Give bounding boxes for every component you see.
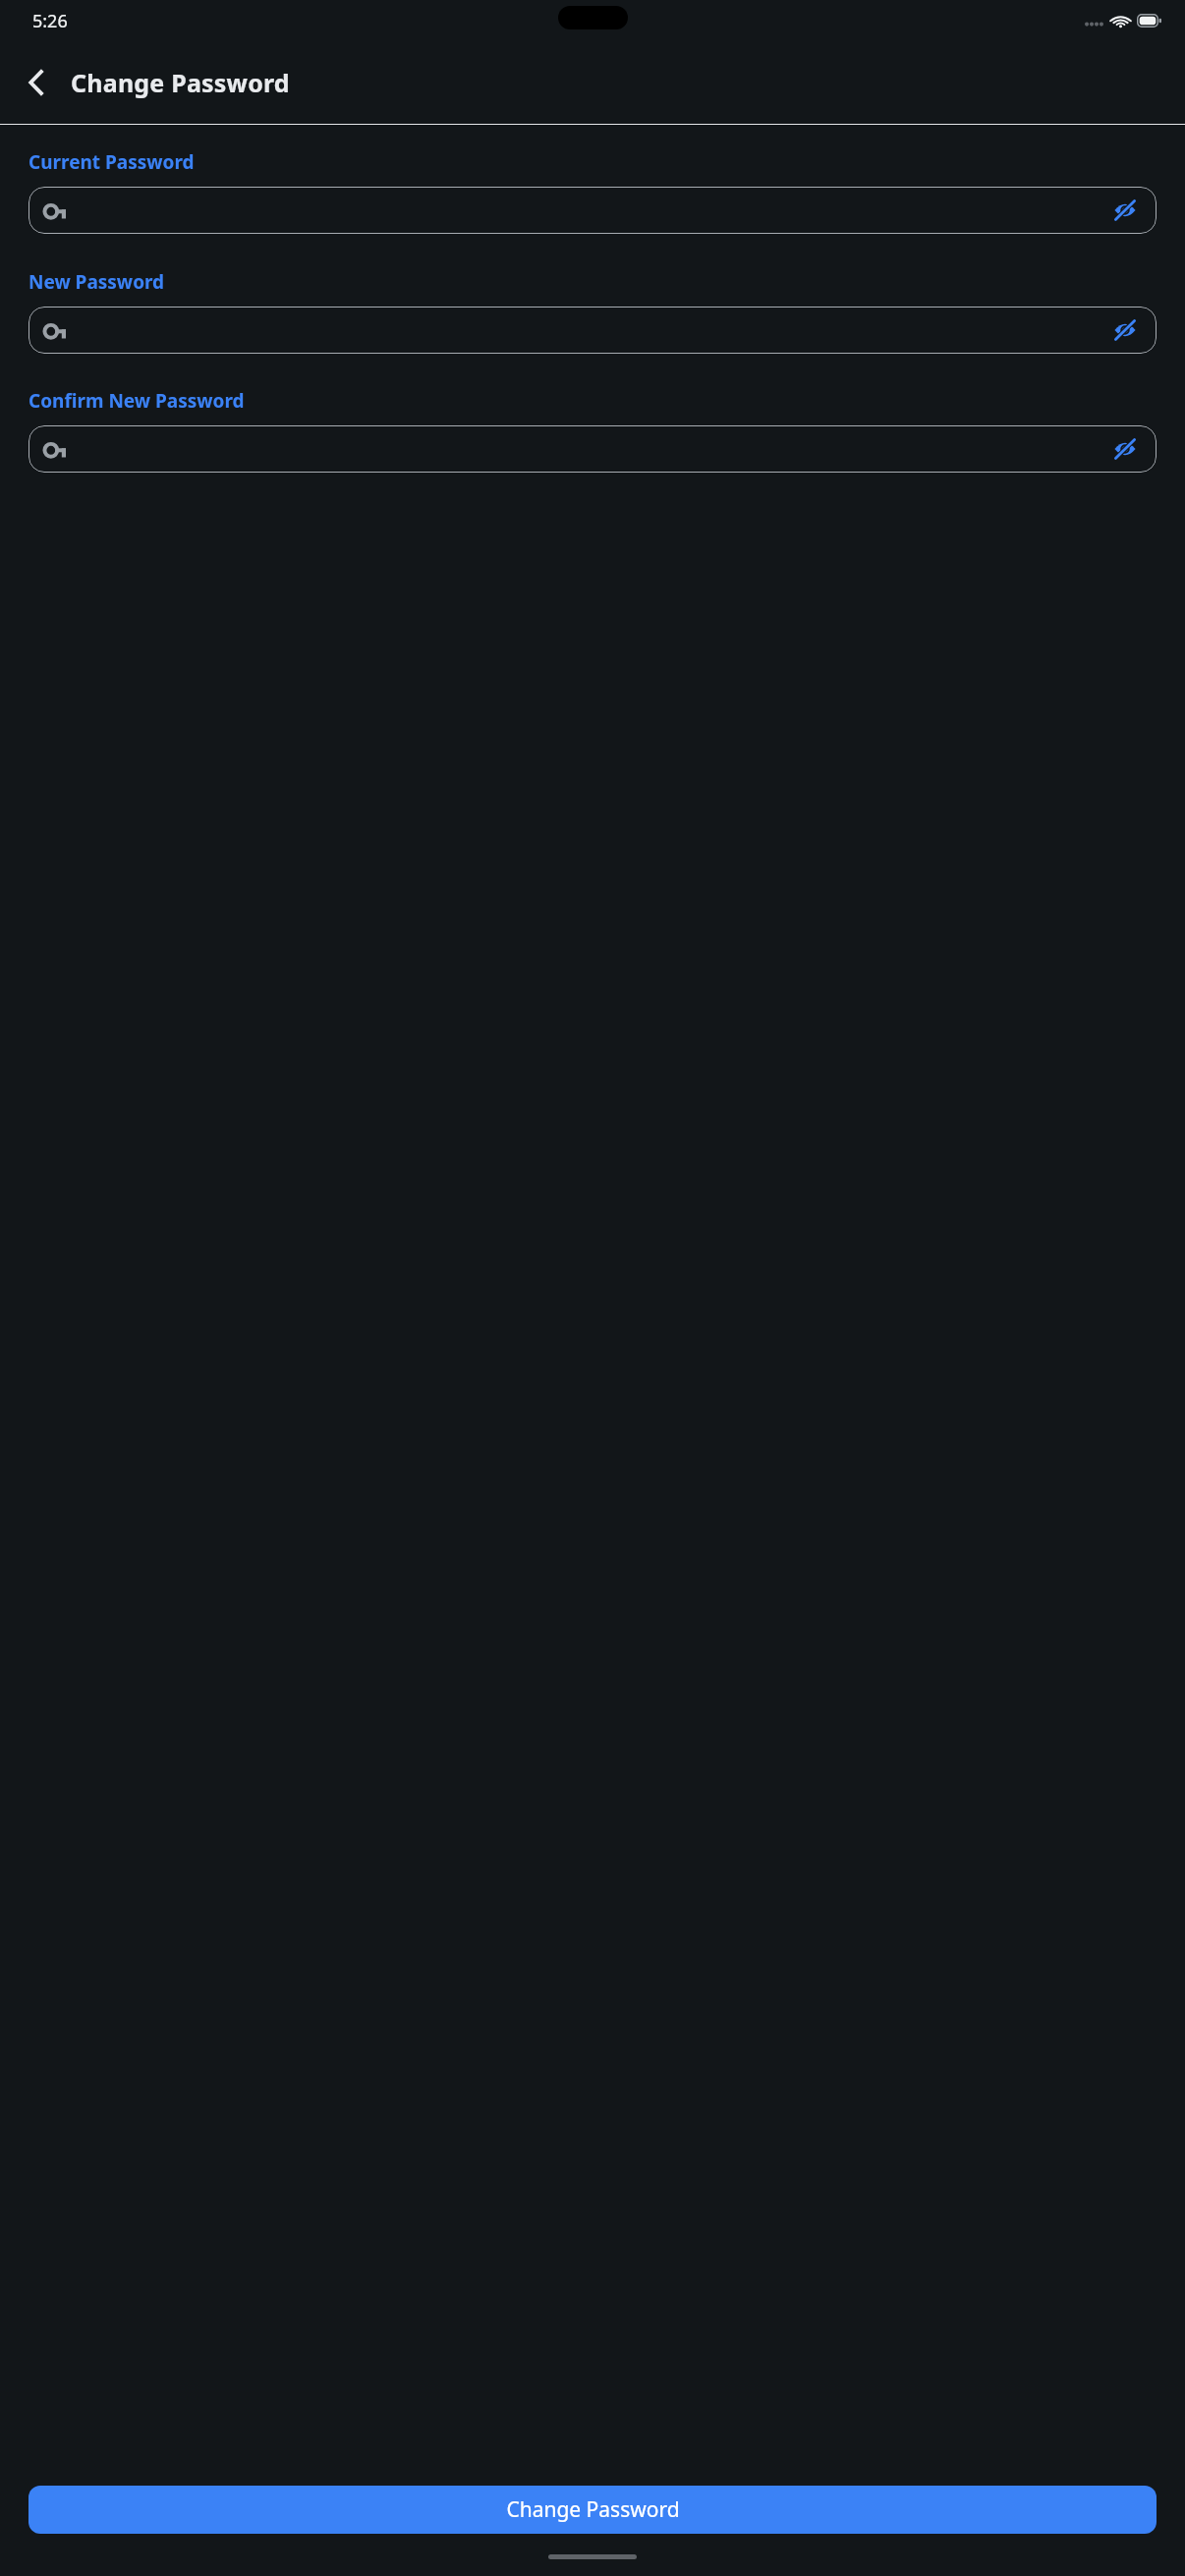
staticText: New Password <box>28 269 165 295</box>
button[interactable]: Show password <box>28 187 1157 234</box>
staticText: Confirm New Password <box>28 388 245 414</box>
button[interactable]: Change Password <box>28 2486 1157 2534</box>
staticText: Current Password <box>28 149 195 175</box>
staticText: 5:26 <box>32 9 68 33</box>
staticText: Change Password <box>506 2495 680 2524</box>
button[interactable]: Back <box>20 67 51 98</box>
button[interactable]: Show password <box>1109 314 1141 346</box>
button[interactable]: Show password <box>1109 433 1141 465</box>
button[interactable]: Show password <box>28 425 1157 473</box>
staticText: Change Password <box>71 66 290 99</box>
button[interactable]: Show password <box>1109 195 1141 226</box>
button[interactable]: Show password <box>28 307 1157 354</box>
